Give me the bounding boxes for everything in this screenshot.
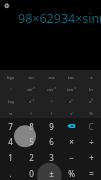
button[interactable]: log <box>0 94 21 106</box>
staticText: cos <box>48 75 55 80</box>
staticText: 7 <box>8 121 13 132</box>
button[interactable]: ^ <box>41 94 61 106</box>
staticText: × <box>69 136 74 147</box>
staticText: = <box>89 168 94 179</box>
button[interactable]: 5 <box>21 133 41 148</box>
button[interactable]: ( <box>21 106 41 118</box>
staticText: ! <box>10 87 12 92</box>
staticText: ÷ <box>89 136 94 147</box>
staticText: C <box>88 121 94 132</box>
button[interactable]: ) <box>41 106 61 118</box>
button[interactable]: + <box>81 148 101 164</box>
staticText: 9 <box>49 121 54 132</box>
staticText: % <box>89 111 93 116</box>
button[interactable]: cos <box>41 70 61 82</box>
staticText: . <box>9 168 12 179</box>
button[interactable]: % <box>81 106 101 118</box>
button[interactable]: sin <box>21 70 41 82</box>
button[interactable]: tan <box>61 70 81 82</box>
button[interactable]: 3 <box>41 148 61 164</box>
staticText: 8 <box>29 121 34 132</box>
button[interactable]: × <box>61 133 81 148</box>
staticText: x³ <box>89 99 93 104</box>
staticText: 2 <box>29 152 34 163</box>
staticText: √ <box>70 111 73 116</box>
staticText: 4 <box>8 136 13 147</box>
button[interactable]: hyp <box>0 70 21 82</box>
button[interactable]: π <box>0 106 21 118</box>
button[interactable]: % <box>61 164 81 180</box>
staticText: % <box>68 168 75 179</box>
button[interactable]: Delete <box>61 118 81 133</box>
button[interactable]: 2 <box>21 148 41 164</box>
staticText: tan⁻¹ <box>67 87 76 92</box>
staticText: x⁻¹ <box>29 99 34 104</box>
staticText: ^ <box>50 99 53 104</box>
staticText: sin <box>28 75 34 80</box>
button[interactable]: 7 <box>0 118 21 133</box>
staticText: 3 <box>49 152 54 163</box>
staticText: 6 <box>49 136 54 147</box>
staticText: ln <box>89 87 93 92</box>
button[interactable]: Settings <box>2 1 11 10</box>
button[interactable]: x⁻¹ <box>21 94 41 106</box>
staticText: ± <box>49 168 54 179</box>
staticText: − <box>69 152 74 163</box>
staticText: 5 <box>29 136 34 147</box>
button[interactable]: 6 <box>41 133 61 148</box>
staticText: e <box>90 75 93 80</box>
staticText: 98×62934×sin( <box>18 10 101 27</box>
button[interactable]: cos⁻¹ <box>41 82 61 94</box>
staticText: hyp <box>7 75 14 80</box>
button[interactable]: √ <box>61 106 81 118</box>
staticText: + <box>89 152 94 163</box>
button[interactable]: 1 <box>0 148 21 164</box>
button[interactable]: tan⁻¹ <box>61 82 81 94</box>
staticText: 1 <box>8 152 13 163</box>
staticText: tan <box>68 75 74 80</box>
button[interactable]: sin⁻¹ <box>21 82 41 94</box>
button[interactable]: ln <box>81 82 101 94</box>
staticText: 0 <box>29 168 34 179</box>
staticText: π <box>9 111 12 116</box>
button[interactable]: x² <box>61 94 81 106</box>
staticText: cos⁻¹ <box>47 87 56 92</box>
button[interactable]: 9 <box>41 118 61 133</box>
staticText: log <box>8 99 14 104</box>
button[interactable]: . <box>0 164 21 180</box>
button[interactable]: = <box>81 164 101 180</box>
button[interactable]: 8 <box>21 118 41 133</box>
button[interactable]: x³ <box>81 94 101 106</box>
button[interactable]: e <box>81 70 101 82</box>
staticText: ( <box>30 111 32 116</box>
button[interactable]: ± <box>41 164 61 180</box>
button[interactable]: 0 <box>21 164 41 180</box>
button[interactable]: 4 <box>0 133 21 148</box>
button[interactable]: C <box>81 118 101 133</box>
staticText: x² <box>69 99 73 104</box>
staticText: ) <box>50 111 52 116</box>
button[interactable]: − <box>61 148 81 164</box>
button[interactable]: ÷ <box>81 133 101 148</box>
staticText: sin⁻¹ <box>27 87 35 92</box>
